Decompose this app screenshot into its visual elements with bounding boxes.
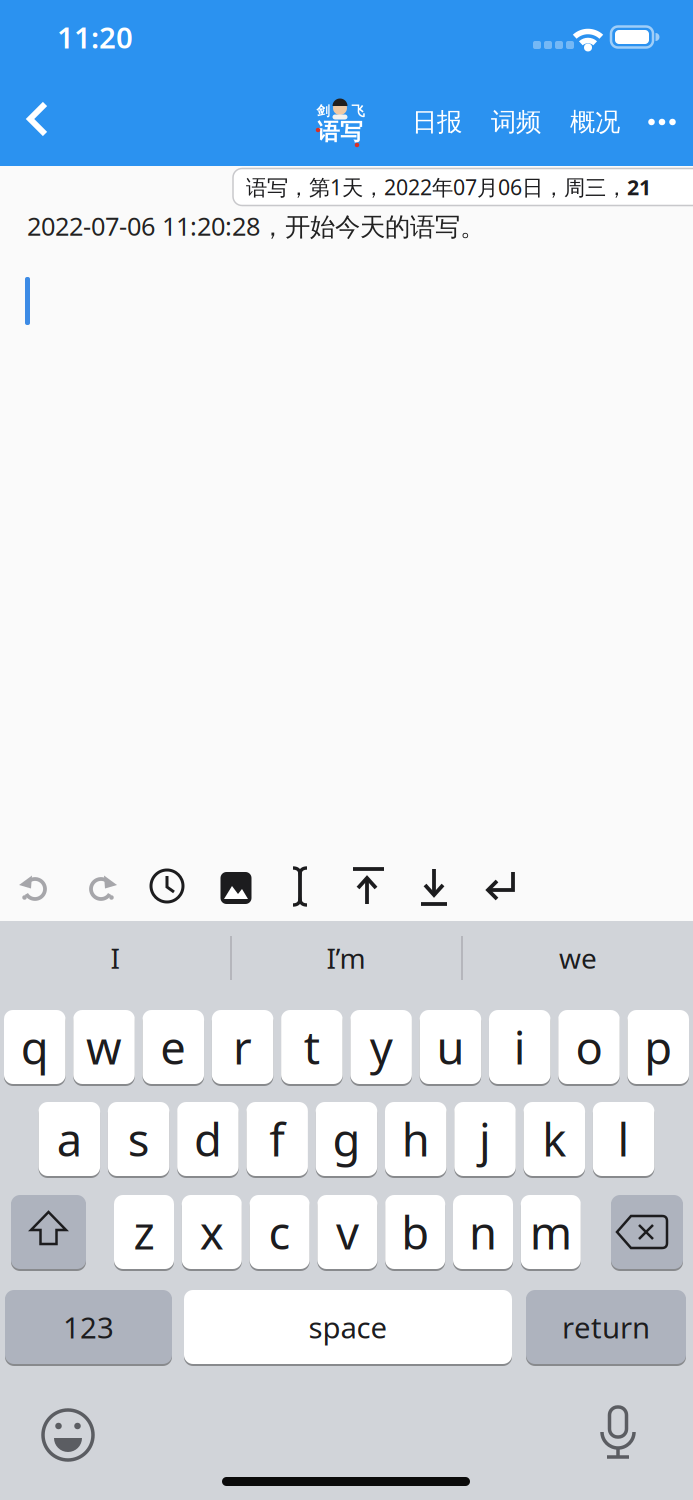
staticText: I [110, 939, 119, 977]
staticText: 日报 [412, 106, 462, 137]
staticText: r [233, 1017, 252, 1077]
staticText: c [269, 1202, 291, 1262]
staticText: m [530, 1202, 572, 1262]
staticText: 123 [63, 1307, 114, 1346]
staticText: p [644, 1017, 672, 1077]
staticText: n [469, 1202, 497, 1262]
staticText: 语写 [317, 118, 363, 146]
staticText: I’m [326, 939, 365, 977]
staticText: d [194, 1109, 222, 1169]
staticText: s [128, 1109, 150, 1169]
staticText: 语写，第1天，2022年07月06日，周三， [246, 173, 627, 201]
staticText: 11:20 [57, 17, 133, 56]
staticText: we [559, 939, 597, 977]
staticText: 飞 [351, 103, 364, 119]
staticText: j [479, 1109, 491, 1169]
staticText: z [133, 1202, 154, 1262]
staticText: x [200, 1202, 224, 1262]
staticText: v [336, 1202, 359, 1262]
staticText: u [436, 1017, 464, 1077]
staticText: w [86, 1017, 122, 1077]
staticText: e [160, 1017, 186, 1077]
staticText: 剑 [316, 103, 329, 119]
staticText: b [401, 1202, 429, 1262]
staticText: 词频 [491, 106, 541, 137]
staticText: k [542, 1109, 566, 1169]
staticText: l [618, 1109, 630, 1169]
staticText: h [402, 1109, 430, 1169]
staticText: space [308, 1307, 387, 1346]
staticText: 21 [627, 173, 651, 201]
staticText: return [562, 1307, 650, 1346]
staticText: a [57, 1109, 82, 1169]
staticText: f [269, 1109, 285, 1169]
staticText: q [21, 1017, 49, 1077]
staticText: g [332, 1109, 360, 1169]
staticText: i [514, 1017, 526, 1077]
staticText: o [575, 1017, 602, 1077]
staticText: 2022-07-06 11:20:28，开始今天的语写。 [27, 209, 485, 243]
staticText: 概况 [570, 106, 620, 137]
staticText: y [370, 1017, 393, 1077]
staticText: t [304, 1017, 320, 1077]
